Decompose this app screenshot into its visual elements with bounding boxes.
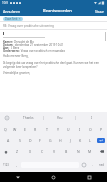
staticText: S	[19, 138, 21, 143]
button[interactable]: Stuur	[92, 7, 107, 16]
staticText: O	[89, 127, 92, 132]
staticText: M	[88, 149, 92, 154]
staticText: K	[79, 138, 82, 143]
button[interactable]: I	[74, 124, 85, 135]
staticText: E	[24, 127, 26, 132]
staticText: V	[53, 149, 56, 154]
staticText: G	[49, 138, 52, 143]
staticText: R	[34, 127, 37, 132]
button[interactable]: G	[45, 135, 55, 146]
staticText: X	[29, 149, 32, 154]
button[interactable]: U	[63, 124, 74, 135]
button[interactable]: D	[25, 135, 35, 146]
staticText: Daan Smit	[5, 17, 18, 21]
button[interactable]: C	[36, 146, 48, 157]
staticText: Datum:	[3, 43, 14, 46]
button[interactable]: K	[75, 135, 85, 146]
staticText: L	[89, 138, 91, 143]
staticText: ×	[19, 17, 21, 21]
staticText: Onderwerp:	[3, 49, 20, 52]
button[interactable]: Y	[52, 124, 63, 135]
button[interactable]: B	[60, 146, 72, 157]
staticText: C	[41, 149, 44, 154]
staticText: RE: Vraag over praktische uitvoering	[3, 24, 54, 28]
staticText: U	[67, 127, 70, 132]
button[interactable]: F	[35, 135, 45, 146]
staticText: D	[29, 138, 32, 143]
button[interactable]: Shift	[0, 146, 11, 157]
staticText: N	[77, 149, 80, 154]
staticText: donderdag 21 september 2019 10:41	[14, 43, 64, 46]
button[interactable]: Q	[0, 124, 10, 135]
button[interactable]: M	[84, 146, 96, 157]
button[interactable]: Z	[11, 146, 24, 157]
button[interactable]: X	[24, 146, 36, 157]
button[interactable]: L	[85, 135, 95, 146]
button[interactable]: R	[30, 124, 41, 135]
button[interactable]: Annuleren	[0, 7, 24, 16]
staticText: Hallo meneer Berg,	[3, 54, 29, 58]
button[interactable]: N	[72, 146, 84, 157]
staticText: H	[59, 138, 62, 143]
staticText: B	[65, 149, 68, 154]
staticText: Vraag over praktisch en maandag	[20, 49, 65, 52]
staticText: I	[79, 127, 81, 132]
staticText: 10:9	[2, 1, 8, 5]
button[interactable]: ?123	[0, 157, 12, 172]
button[interactable]: Emoji	[79, 157, 88, 172]
staticText: ,	[16, 162, 17, 167]
staticText: Kamer:	[3, 40, 13, 43]
staticText: .	[92, 162, 93, 167]
button[interactable]: Enter	[97, 138, 105, 143]
staticText: F	[39, 138, 41, 143]
staticText: ?123	[3, 163, 9, 167]
staticText: T	[46, 127, 48, 132]
button[interactable]: A	[3, 135, 14, 146]
staticText: Annuleren	[3, 9, 21, 14]
button[interactable]: H	[55, 135, 65, 146]
button[interactable]: Voice input	[0, 112, 13, 124]
button[interactable]: P	[96, 124, 107, 135]
staticText: P	[100, 127, 103, 132]
button[interactable]: V	[48, 146, 60, 157]
staticText: Thanks	[23, 116, 34, 120]
staticText: ned	[99, 163, 104, 167]
staticText: Y	[57, 127, 59, 132]
button[interactable]: ned	[96, 157, 107, 172]
staticText: I	[91, 116, 93, 120]
button[interactable]: J	[65, 135, 75, 146]
staticText: W	[13, 127, 17, 132]
button[interactable]: W	[10, 124, 20, 135]
button[interactable]: T	[41, 124, 52, 135]
button[interactable]: O	[85, 124, 96, 135]
staticText: You	[57, 116, 63, 120]
staticText: Beantwoorden	[43, 8, 72, 14]
button[interactable]: Recent apps	[71, 172, 107, 182]
button[interactable]: Home	[35, 172, 71, 182]
button[interactable]: Hide keyboard	[0, 172, 35, 182]
staticText: Aan:	[3, 46, 10, 49]
button[interactable]: S	[14, 135, 25, 146]
staticText: J	[70, 138, 71, 143]
staticText: J. Berg	[10, 46, 20, 49]
staticText: A	[7, 138, 10, 143]
staticText: Z	[16, 149, 19, 154]
staticText: Ik begrijp dat uw vraag over het praktis…	[3, 61, 99, 68]
staticText: Stuur	[95, 9, 104, 14]
button[interactable]: Backspace	[96, 146, 107, 157]
staticText: Chevalet de Blo	[13, 40, 35, 43]
staticText: Vriendelijke groeten,	[3, 71, 31, 75]
button[interactable]: E	[20, 124, 30, 135]
staticText: Q	[4, 127, 7, 132]
button[interactable]: Daan Smit	[3, 17, 23, 21]
